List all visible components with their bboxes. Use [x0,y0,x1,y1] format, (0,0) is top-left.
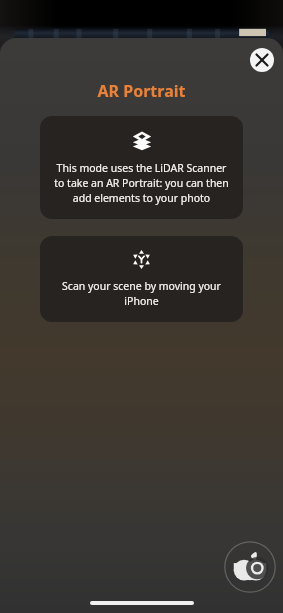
staticText: Scan your scene by moving your iPhone [53,279,230,308]
staticText: AR Portrait [0,80,283,102]
button[interactable]: Scan your scene by moving your iPhone [40,236,243,322]
button[interactable]: Close [250,48,274,72]
button[interactable]: This mode uses the LiDAR Scanner to take… [40,116,243,219]
staticText: This mode uses the LiDAR Scanner to take… [53,161,230,205]
